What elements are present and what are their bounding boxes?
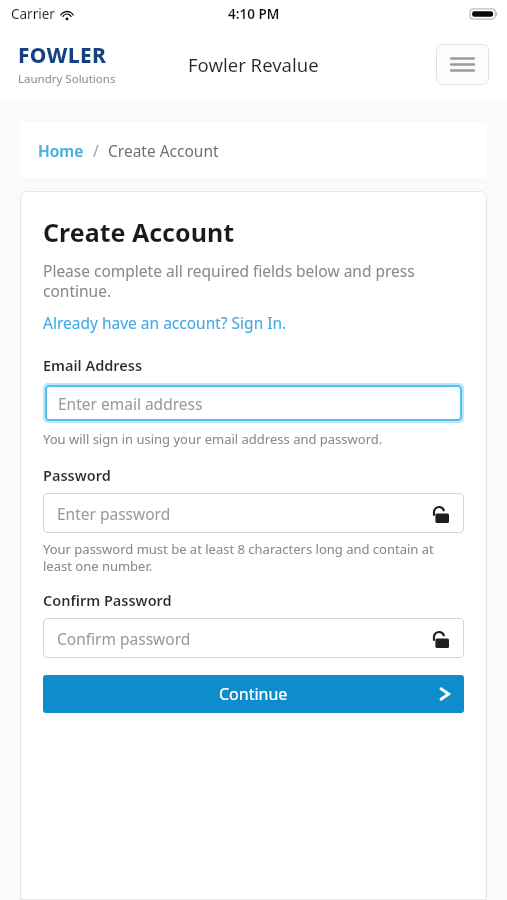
staticText: Password [43, 465, 111, 485]
staticText: / [93, 140, 99, 161]
staticText: Confirm Password [43, 590, 172, 610]
button[interactable]: FOWLER [18, 41, 116, 87]
staticText: Enter password [57, 503, 171, 524]
staticText: Fowler Revalue [188, 52, 319, 77]
staticText: Home [38, 140, 84, 161]
button[interactable]: Enter password [43, 493, 464, 533]
button[interactable]: Show password [429, 502, 451, 524]
staticText: Laundry Solutions [18, 71, 116, 87]
staticText: You will sign in using your email addres… [43, 430, 383, 448]
staticText: Enter email address [58, 393, 203, 414]
staticText: Carrier [11, 5, 55, 23]
button[interactable]: Show password [429, 627, 451, 649]
button[interactable]: Menu [436, 44, 489, 85]
button[interactable]: Continue [43, 675, 464, 713]
staticText: Already have an account? Sign In. [43, 312, 287, 333]
staticText: Continue [219, 683, 288, 705]
button[interactable]: Already have an account? Sign In. [43, 312, 287, 333]
staticText: Email Address [43, 355, 143, 375]
button[interactable]: Confirm password [43, 618, 464, 658]
staticText: Create Account [43, 215, 234, 249]
button[interactable]: Home [38, 140, 84, 161]
staticText: 4:10 PM [228, 5, 280, 23]
staticText: FOWLER [18, 41, 107, 70]
staticText: Confirm password [57, 628, 191, 649]
button[interactable]: Enter email address [45, 385, 462, 421]
staticText: Your password must be at least 8 charact… [43, 540, 464, 575]
staticText: Please complete all required fields belo… [43, 260, 464, 301]
staticText: Create Account [108, 140, 219, 161]
